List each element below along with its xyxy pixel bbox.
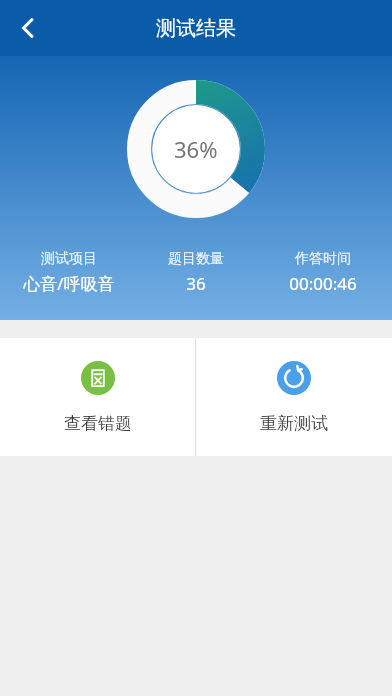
staticText: 作答时间 <box>295 250 351 268</box>
staticText: 题目数量 <box>168 250 224 268</box>
button[interactable]: 重新测试 <box>196 338 392 456</box>
button[interactable]: Back <box>4 4 52 52</box>
staticText: 36% <box>174 134 218 164</box>
staticText: 查看错题 <box>64 413 132 434</box>
button[interactable]: 查看错题 <box>0 338 195 456</box>
staticText: 心音/呼吸音 <box>23 272 115 295</box>
staticText: 重新测试 <box>260 413 328 434</box>
staticText: 测试结果 <box>156 16 236 41</box>
staticText: 36 <box>186 272 206 295</box>
staticText: 测试项目 <box>41 250 97 268</box>
staticText: 00:00:46 <box>289 272 357 295</box>
